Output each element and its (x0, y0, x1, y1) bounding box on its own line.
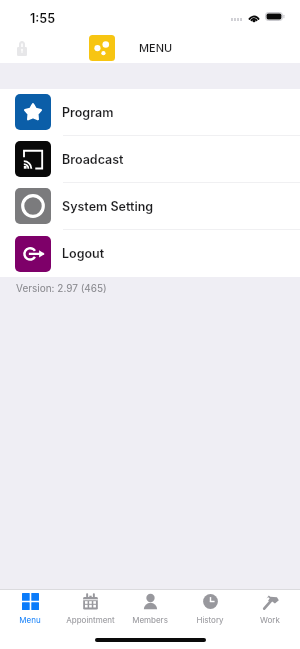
button[interactable]: System Setting (0, 183, 300, 229)
button[interactable]: Members (120, 590, 180, 625)
staticText: 1:55 (30, 11, 55, 26)
button[interactable]: Program (0, 89, 300, 135)
staticText: MENU (139, 41, 173, 54)
staticText: Menu (19, 615, 41, 625)
staticText: System Setting (62, 199, 154, 214)
staticText: Version: 2.97 (465) (16, 282, 107, 294)
staticText: History (196, 615, 224, 625)
button[interactable]: Work (240, 590, 300, 625)
button[interactable]: Menu (0, 590, 60, 625)
button[interactable]: History (180, 590, 240, 625)
staticText: Broadcast (62, 152, 124, 167)
button[interactable]: App logo (89, 35, 115, 61)
staticText: Logout (62, 246, 105, 261)
staticText: Appointment (66, 615, 115, 625)
button[interactable]: Broadcast (0, 136, 300, 182)
button[interactable]: Lock (11, 37, 33, 59)
button[interactable]: Logout (0, 230, 300, 277)
button[interactable]: Appointment (60, 590, 120, 625)
staticText: Members (132, 615, 168, 625)
staticText: Program (62, 105, 114, 120)
staticText: Work (260, 615, 280, 625)
